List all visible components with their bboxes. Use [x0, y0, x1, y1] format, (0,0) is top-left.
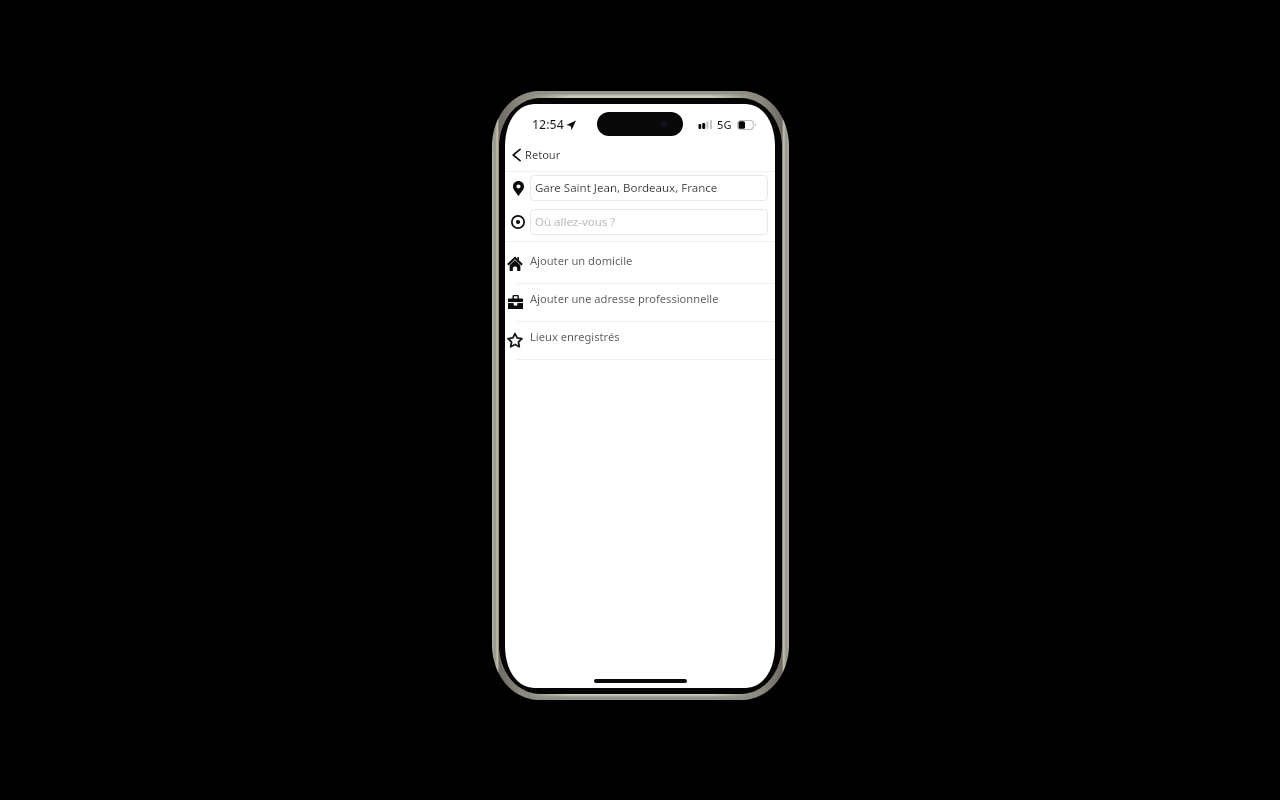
staticText: 12:54: [532, 116, 564, 133]
other: Destination: [511, 215, 525, 229]
staticText: 5G: [717, 117, 732, 132]
staticText: Ajouter un domicile: [530, 253, 633, 268]
staticText: Où allez-vous ?: [535, 214, 616, 230]
staticText: Gare Saint Jean, Bordeaux, France: [535, 180, 718, 196]
staticText: Lieux enregistrés: [530, 329, 620, 344]
button[interactable]: Destination: [505, 209, 775, 235]
other: Point de départ: [513, 181, 524, 196]
staticText: Retour: [525, 147, 561, 162]
button[interactable]: Back: [509, 144, 564, 165]
button[interactable]: Ajouter un domicile: [505, 241, 775, 283]
button[interactable]: Point de départ: [505, 175, 775, 201]
button[interactable]: Ajouter une adresse professionnelle: [505, 283, 775, 321]
button[interactable]: Lieux enregistrés: [505, 321, 775, 359]
staticText: Ajouter une adresse professionnelle: [530, 291, 719, 306]
other: Back: [512, 148, 521, 162]
